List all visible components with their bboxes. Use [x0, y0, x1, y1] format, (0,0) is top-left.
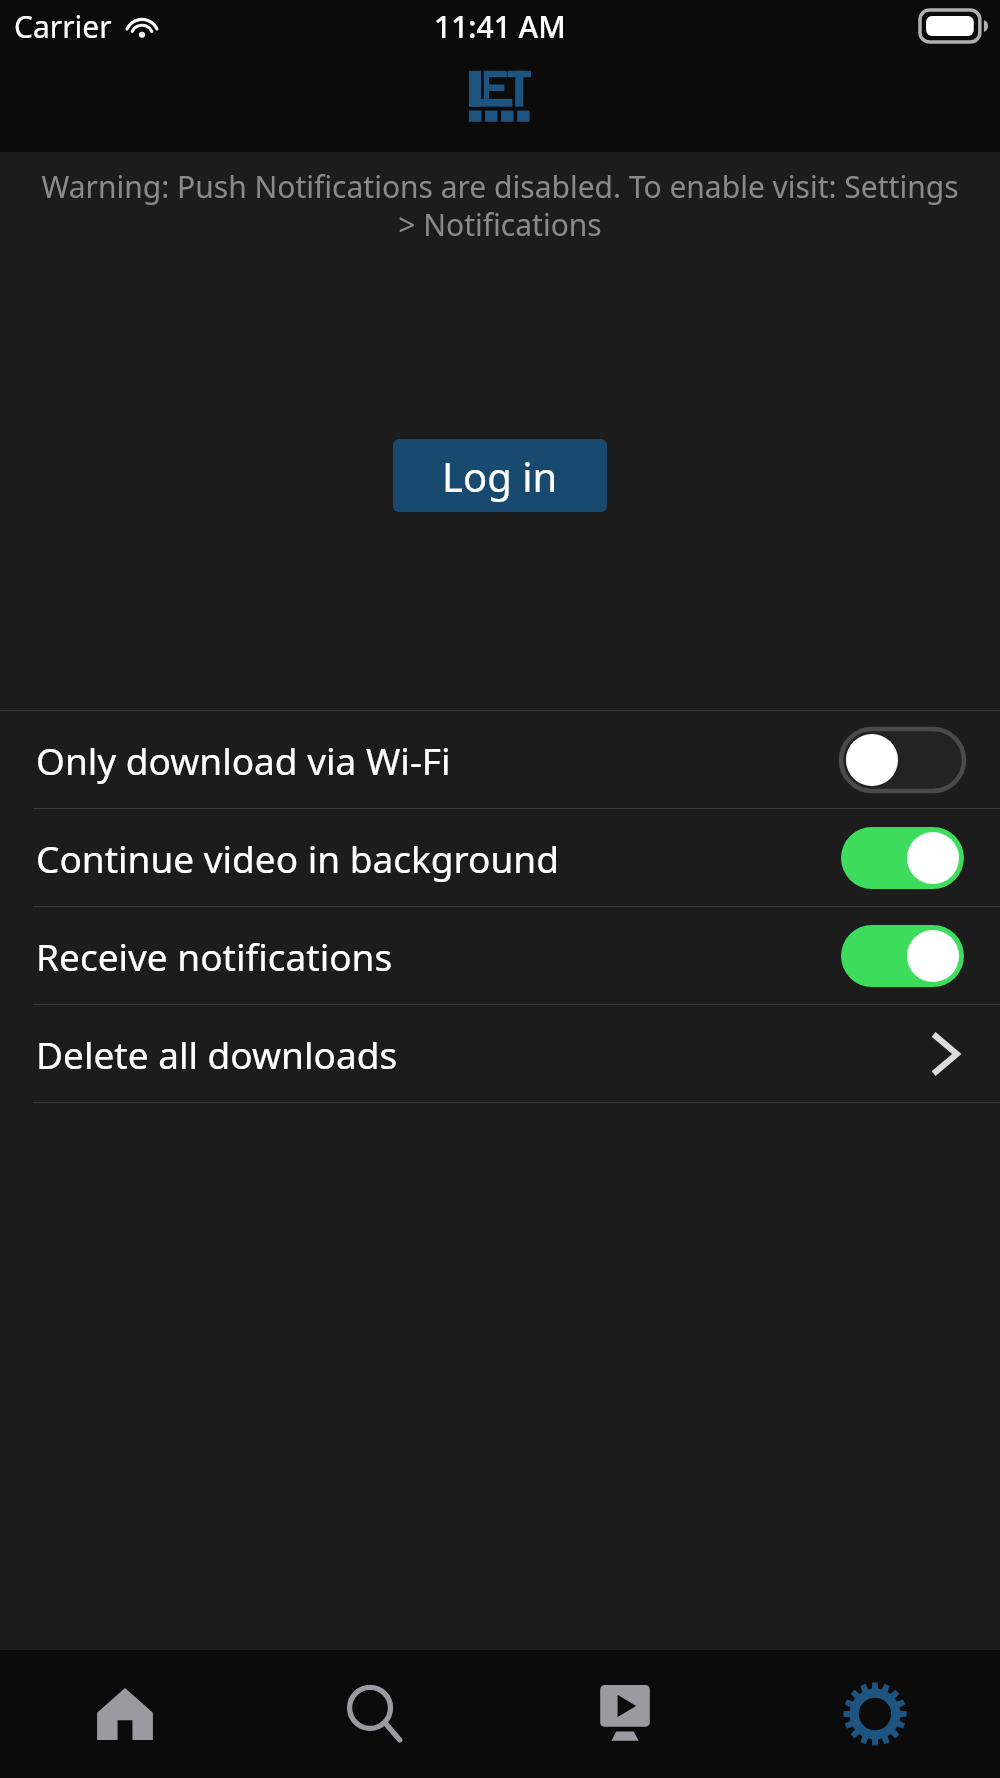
staticText: Warning: Push Notifications are disabled…	[32, 166, 968, 245]
button[interactable]	[841, 729, 964, 791]
staticText: Continue video in background	[36, 833, 841, 883]
staticText: Carrier	[14, 6, 112, 47]
button[interactable]: Delete all downloads	[0, 1005, 1000, 1102]
button[interactable]: Log in	[393, 439, 607, 512]
button[interactable]	[841, 827, 964, 889]
button[interactable]: Videos	[500, 1650, 750, 1778]
button[interactable]: Only download via Wi-Fi	[0, 711, 1000, 808]
staticText: Delete all downloads	[36, 1029, 928, 1079]
button[interactable]	[841, 925, 964, 987]
staticText: Log in	[442, 449, 558, 503]
staticText: Receive notifications	[36, 931, 841, 981]
staticText: Only download via Wi-Fi	[36, 735, 841, 785]
button[interactable]: Continue video in background	[0, 809, 1000, 906]
button[interactable]: Receive notifications	[0, 907, 1000, 1004]
staticText: 11:41 AM	[434, 6, 566, 47]
button[interactable]: Search	[250, 1650, 500, 1778]
button[interactable]: Home	[0, 1650, 250, 1778]
button[interactable]: Settings	[750, 1650, 1000, 1778]
